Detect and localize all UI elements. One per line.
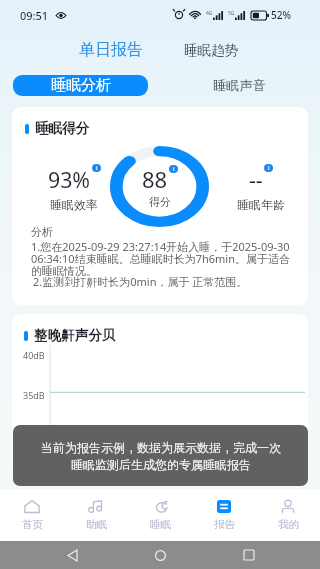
staticText: 得分 <box>149 195 171 209</box>
staticText: 09:51 <box>20 8 49 23</box>
staticText: 报告 <box>214 518 235 531</box>
staticText: 5G <box>228 10 235 17</box>
staticText: 睡眠年龄 <box>237 197 285 212</box>
button[interactable]: 报告 <box>192 489 256 541</box>
staticText: 52% <box>271 8 291 22</box>
staticText: 睡眠效率 <box>50 197 98 212</box>
staticText: 睡眠 <box>150 518 171 531</box>
staticText: 睡眠趋势 <box>184 42 238 59</box>
staticText: 93% <box>48 165 91 194</box>
staticText: 当前为报告示例，数据为展示数据，完成一次睡眠监测后生成您的专属睡眠报告 <box>39 440 283 472</box>
button[interactable]: 睡眠声音 <box>206 75 272 96</box>
button[interactable]: 我的 <box>256 489 320 541</box>
button[interactable]: Info <box>169 165 178 173</box>
staticText: 分析 <box>31 225 53 239</box>
button[interactable]: Recents <box>232 541 266 569</box>
staticText: 整晚鼾声分贝 <box>34 327 116 344</box>
button[interactable]: Back <box>55 541 89 569</box>
staticText: 睡眠声音 <box>213 77 266 94</box>
staticText: 1.您在2025-09-29 23:27:14开始入睡，于2025-09-30 … <box>31 239 299 278</box>
button[interactable]: Info <box>264 164 273 172</box>
staticText: i <box>96 164 98 172</box>
staticText: 首页 <box>22 518 43 531</box>
button[interactable]: 助眠 <box>64 489 128 541</box>
button[interactable]: Info <box>92 164 101 172</box>
staticText: 睡眠得分 <box>35 120 90 137</box>
button[interactable]: Home <box>143 541 177 569</box>
button[interactable]: 单日报告 <box>70 36 152 64</box>
staticText: 2.监测到打鼾时长为0min，属于 正常范围。 <box>33 274 248 289</box>
staticText: 单日报告 <box>79 40 143 60</box>
button[interactable]: 首页 <box>0 489 64 541</box>
staticText: 88 <box>142 164 168 194</box>
staticText: 35dB <box>23 389 45 401</box>
staticText: 我的 <box>278 518 299 531</box>
staticText: i <box>268 164 270 172</box>
staticText: 睡眠分析 <box>51 76 111 95</box>
button[interactable]: 睡眠趋势 <box>176 38 246 63</box>
button[interactable]: 睡眠 <box>128 489 192 541</box>
staticText: i <box>173 165 175 173</box>
staticText: 4G <box>206 10 213 17</box>
staticText: -- <box>249 165 263 194</box>
staticText: 助眠 <box>86 518 107 531</box>
button[interactable]: 睡眠分析 <box>13 75 148 96</box>
staticText: 40dB <box>23 349 45 361</box>
